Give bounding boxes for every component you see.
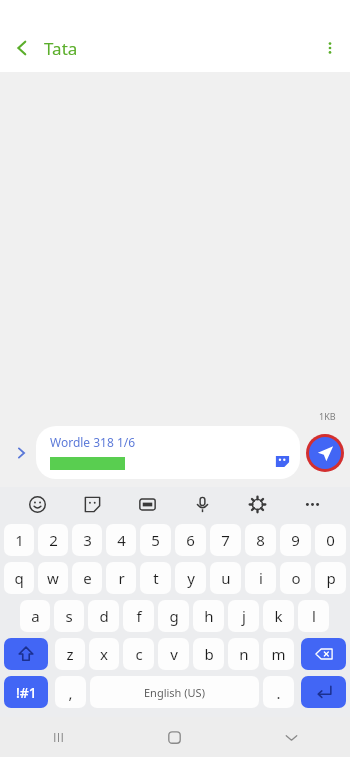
button[interactable]: l (298, 600, 329, 632)
button[interactable]: x (89, 638, 119, 670)
staticText: p (326, 568, 336, 588)
staticText: !#1 (16, 683, 37, 702)
staticText: 0 (326, 530, 335, 550)
button[interactable]: Wordle 318 1/6 (36, 426, 300, 479)
staticText: 9 (291, 530, 300, 550)
button[interactable]: 2 (38, 524, 68, 556)
staticText: d (99, 606, 109, 626)
button[interactable]: , (55, 676, 86, 708)
button[interactable]: q (4, 562, 34, 594)
button[interactable]: Expand (6, 438, 36, 468)
button[interactable]: h (193, 600, 224, 632)
button[interactable]: t (140, 562, 171, 594)
button[interactable]: More options (310, 24, 350, 72)
button[interactable]: 5 (140, 524, 171, 556)
staticText: j (242, 606, 246, 626)
staticText: , (68, 683, 73, 703)
staticText: . (276, 683, 281, 703)
button[interactable]: Hide keyboard (233, 717, 350, 757)
button[interactable]: m (263, 638, 294, 670)
staticText: u (221, 568, 231, 588)
button[interactable]: v (158, 638, 189, 670)
button[interactable]: 8 (245, 524, 276, 556)
button[interactable]: 6 (175, 524, 206, 556)
button[interactable]: e (72, 562, 102, 594)
button[interactable]: 9 (280, 524, 311, 556)
staticText: c (135, 644, 143, 664)
staticText: r (118, 568, 125, 588)
staticText: 1 (15, 530, 24, 550)
staticText: English (US) (144, 685, 205, 700)
staticText: 6 (186, 530, 195, 550)
button[interactable]: Home (116, 717, 233, 757)
staticText: s (65, 606, 73, 626)
staticText: z (66, 644, 74, 664)
button[interactable]: o (280, 562, 311, 594)
staticText: n (239, 644, 249, 664)
button[interactable]: Sticker (272, 450, 292, 470)
staticText: h (204, 606, 214, 626)
button[interactable]: 0 (315, 524, 346, 556)
button[interactable]: j (228, 600, 259, 632)
staticText: k (274, 606, 283, 626)
button[interactable]: n (228, 638, 259, 670)
staticText: Tata (44, 37, 78, 60)
button[interactable]: More (285, 487, 340, 521)
button[interactable]: Back (0, 24, 44, 72)
staticText: m (271, 644, 286, 664)
staticText: l (312, 606, 316, 626)
staticText: 4 (117, 530, 126, 550)
button[interactable]: g (158, 600, 189, 632)
button[interactable]: f (123, 600, 154, 632)
button[interactable]: Shift (4, 638, 48, 670)
button[interactable]: k (263, 600, 294, 632)
staticText: e (83, 568, 92, 588)
button[interactable]: GIF (120, 487, 175, 521)
button[interactable]: w (38, 562, 68, 594)
staticText: 3 (83, 530, 92, 550)
staticText: v (170, 644, 178, 664)
button[interactable]: Send (309, 437, 341, 469)
button[interactable]: 1 (4, 524, 34, 556)
button[interactable]: Settings (230, 487, 285, 521)
staticText: Wordle 318 1/6 (50, 434, 136, 450)
button[interactable]: y (175, 562, 206, 594)
staticText: 2 (49, 530, 58, 550)
staticText: o (291, 568, 301, 588)
button[interactable]: Voice input (175, 487, 230, 521)
button[interactable]: c (123, 638, 154, 670)
staticText: 5 (151, 530, 160, 550)
button[interactable]: d (88, 600, 119, 632)
button[interactable]: Recents (0, 717, 116, 757)
staticText: y (187, 568, 195, 588)
button[interactable]: !#1 (4, 676, 48, 708)
button[interactable]: a (20, 600, 50, 632)
button[interactable]: Enter (301, 676, 346, 708)
staticText: f (136, 606, 142, 626)
button[interactable]: u (210, 562, 241, 594)
button[interactable]: r (106, 562, 136, 594)
staticText: q (14, 568, 24, 588)
staticText: 1KB (319, 410, 336, 422)
staticText: g (169, 606, 179, 626)
button[interactable]: s (54, 600, 84, 632)
button[interactable]: 3 (72, 524, 102, 556)
button[interactable]: b (193, 638, 224, 670)
button[interactable]: 4 (106, 524, 136, 556)
staticText: x (100, 644, 108, 664)
staticText: i (259, 568, 263, 588)
button[interactable]: z (55, 638, 85, 670)
button[interactable]: Stickers (65, 487, 120, 521)
staticText: t (153, 568, 159, 588)
button[interactable]: Backspace (301, 638, 346, 670)
button[interactable]: . (263, 676, 294, 708)
button[interactable]: Emoji (10, 487, 65, 521)
staticText: 7 (221, 530, 230, 550)
staticText: b (204, 644, 214, 664)
button[interactable]: English (US) (90, 676, 259, 708)
staticText: w (47, 568, 59, 588)
staticText: 8 (256, 530, 265, 550)
button[interactable]: i (245, 562, 276, 594)
button[interactable]: p (315, 562, 346, 594)
button[interactable]: 7 (210, 524, 241, 556)
